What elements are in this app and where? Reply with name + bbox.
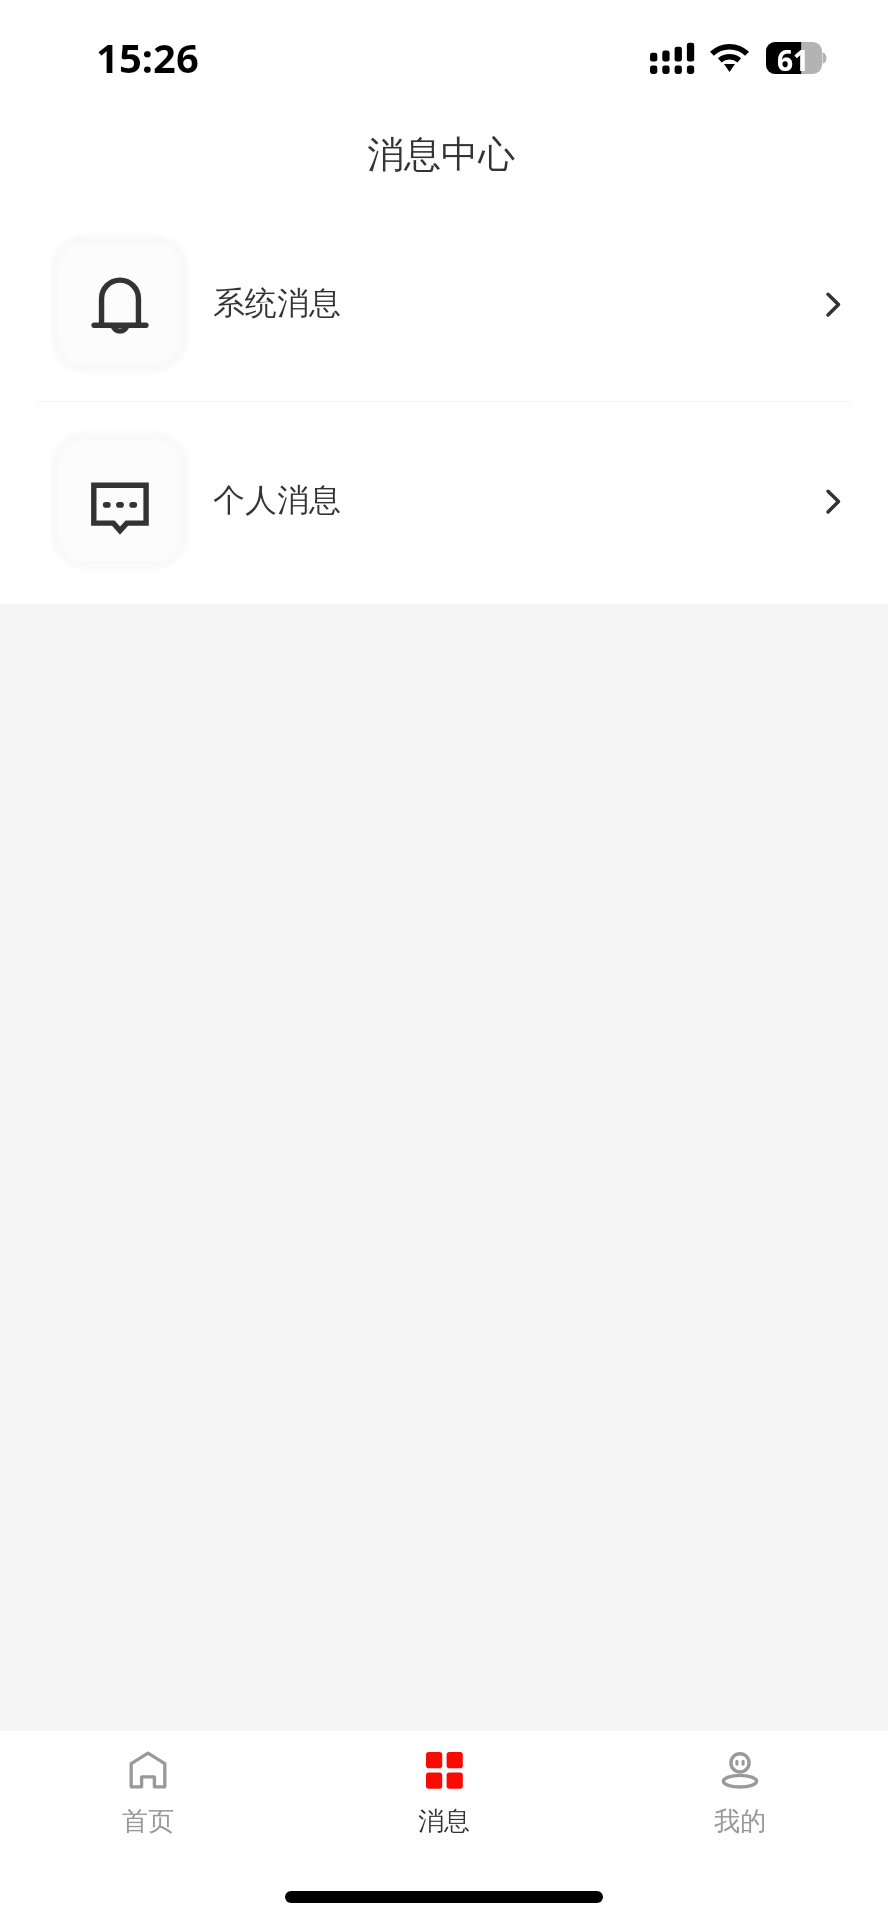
staticText: 首页 xyxy=(122,1805,174,1838)
staticText: 消息中心 xyxy=(367,131,515,178)
staticText: 个人消息 xyxy=(213,480,341,520)
staticText: 61 xyxy=(777,41,810,73)
button[interactable]: 消息 xyxy=(296,1731,592,1855)
staticText: 系统消息 xyxy=(213,283,341,323)
staticText: 消息 xyxy=(418,1805,470,1838)
button[interactable]: 系统消息 xyxy=(0,205,888,401)
staticText: 15:26 xyxy=(96,30,199,84)
button[interactable]: 我的 xyxy=(592,1731,888,1855)
button[interactable]: 个人消息 xyxy=(0,402,888,598)
other: Open 个人消息 xyxy=(816,480,846,520)
other: Open 系统消息 xyxy=(816,283,846,323)
button[interactable]: 首页 xyxy=(0,1731,296,1855)
staticText: 我的 xyxy=(714,1805,766,1838)
